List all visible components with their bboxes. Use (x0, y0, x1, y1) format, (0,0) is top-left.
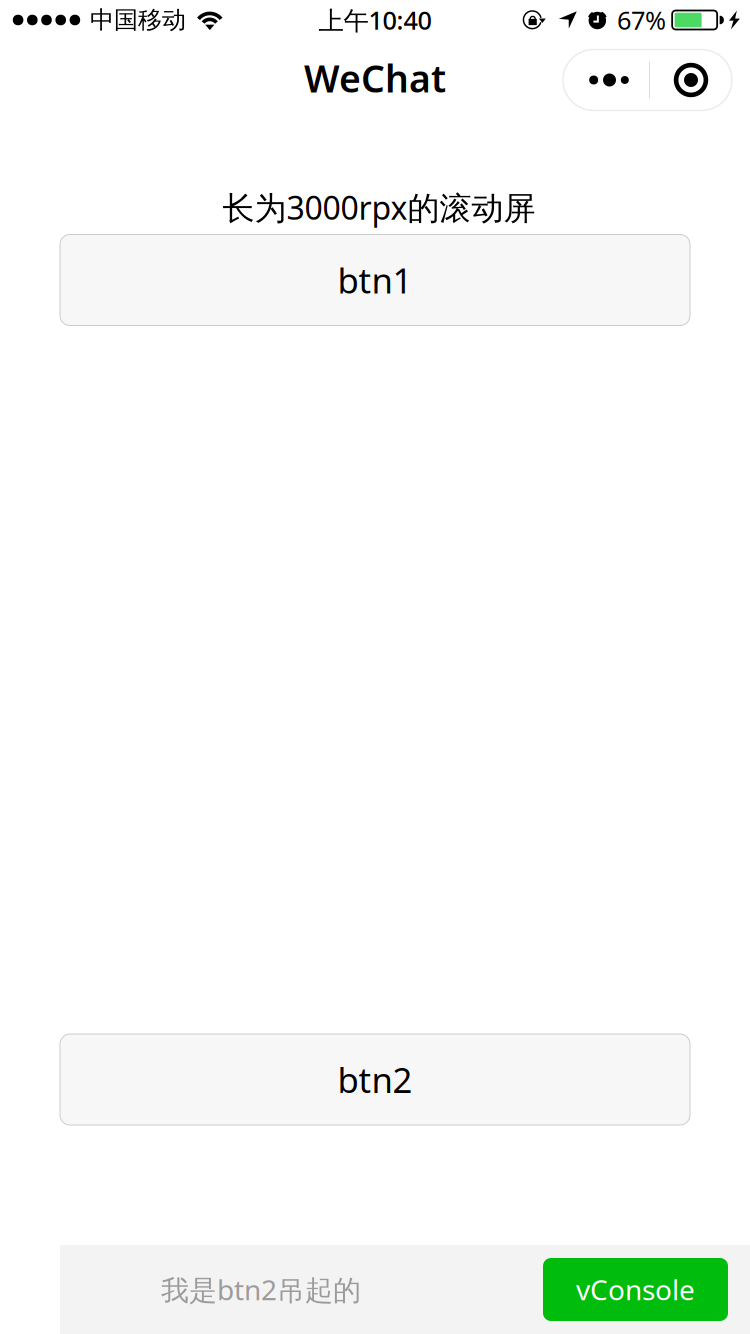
staticText: btn1 (337, 257, 412, 303)
staticText: 中国移动 (90, 5, 186, 35)
button[interactable]: Close mini program (650, 49, 732, 110)
staticText: 我是btn2吊起的 (161, 1271, 361, 1308)
button[interactable]: btn2 (60, 1034, 690, 1125)
staticText: btn2 (337, 1056, 412, 1102)
staticText: WeChat (304, 53, 446, 103)
staticText: 长为3000rpx的滚动屏 (222, 186, 535, 228)
staticText: vConsole (576, 1271, 695, 1308)
button[interactable]: vConsole (543, 1258, 728, 1321)
button[interactable]: btn1 (60, 234, 690, 325)
staticText: 上午10:40 (318, 3, 431, 37)
button[interactable]: More (563, 49, 649, 110)
staticText: 67% (617, 3, 666, 37)
